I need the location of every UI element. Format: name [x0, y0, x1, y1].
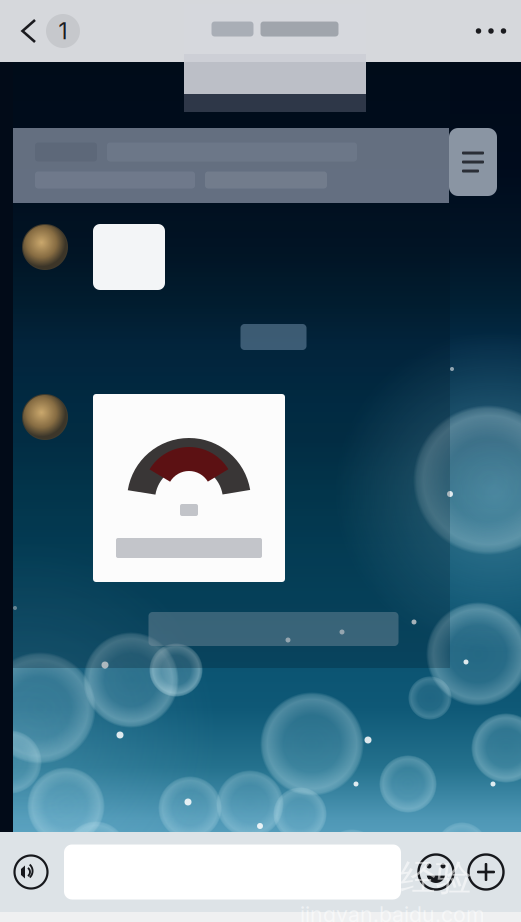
button[interactable]: Message field [64, 844, 401, 899]
button[interactable]: More actions [467, 853, 505, 891]
button[interactable]: Emoji [417, 853, 455, 891]
button[interactable]: Voice message [13, 854, 49, 890]
button[interactable]: Announcement menu [449, 128, 497, 196]
button[interactable]: More [461, 0, 521, 62]
staticText: Baidu 经验 [300, 855, 472, 901]
staticText: jingyan.baidu.com [300, 902, 485, 922]
staticText: 1 [58, 17, 67, 45]
button[interactable]: Back [0, 0, 80, 62]
